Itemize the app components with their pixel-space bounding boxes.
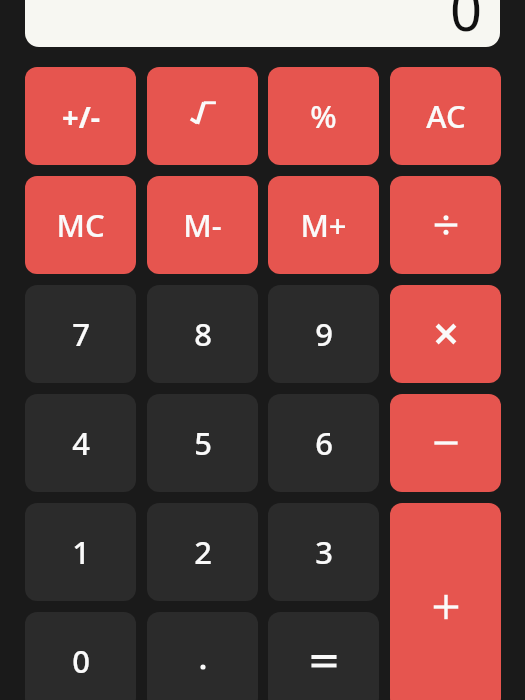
button[interactable]: Two bbox=[147, 503, 258, 601]
button[interactable]: Memory clear bbox=[25, 176, 136, 274]
staticText: 2 bbox=[194, 531, 212, 573]
staticText: MC bbox=[56, 204, 105, 246]
button[interactable]: Five bbox=[147, 394, 258, 492]
button[interactable]: Minus bbox=[390, 394, 501, 492]
staticText: AC bbox=[426, 95, 466, 137]
button[interactable]: Square root bbox=[147, 67, 258, 165]
button[interactable]: Nine bbox=[268, 285, 379, 383]
button[interactable]: All clear bbox=[390, 67, 501, 165]
staticText: 4 bbox=[72, 422, 90, 464]
staticText: 6 bbox=[315, 422, 333, 464]
button[interactable]: Divide bbox=[390, 176, 501, 274]
staticText: M+ bbox=[300, 204, 347, 246]
button[interactable]: Percent bbox=[268, 67, 379, 165]
button[interactable]: One bbox=[25, 503, 136, 601]
staticText: 5 bbox=[194, 422, 212, 464]
staticText: 0 bbox=[72, 640, 90, 682]
button[interactable]: Seven bbox=[25, 285, 136, 383]
button[interactable]: Eight bbox=[147, 285, 258, 383]
button[interactable]: Memory subtract bbox=[147, 176, 258, 274]
button[interactable]: Multiply bbox=[390, 285, 501, 383]
button[interactable]: Six bbox=[268, 394, 379, 492]
staticText: +/- bbox=[62, 97, 100, 136]
button[interactable]: Zero bbox=[25, 612, 136, 700]
staticText: 1 bbox=[72, 531, 90, 573]
staticText: 8 bbox=[194, 313, 212, 355]
button[interactable]: Four bbox=[25, 394, 136, 492]
staticText: M- bbox=[183, 204, 222, 246]
button[interactable]: Toggle sign bbox=[25, 67, 136, 165]
staticText: % bbox=[310, 95, 337, 137]
staticText: 7 bbox=[72, 313, 90, 355]
button[interactable]: Equals bbox=[268, 612, 379, 700]
staticText: 0 bbox=[449, 0, 482, 47]
button[interactable]: 0 bbox=[25, 0, 500, 47]
button[interactable]: Three bbox=[268, 503, 379, 601]
button[interactable]: Plus bbox=[390, 503, 501, 700]
button[interactable]: Decimal point bbox=[147, 612, 258, 700]
staticText: 3 bbox=[315, 531, 333, 573]
button[interactable]: Memory add bbox=[268, 176, 379, 274]
staticText: 9 bbox=[315, 313, 333, 355]
